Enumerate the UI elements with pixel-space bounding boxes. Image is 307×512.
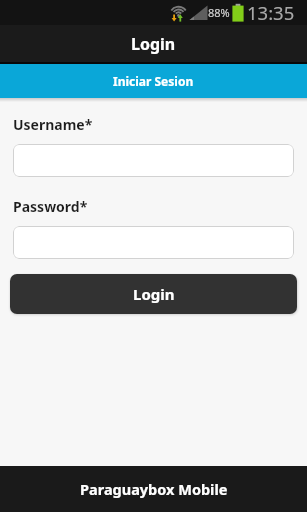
button[interactable]: Login <box>10 274 297 314</box>
staticText: 88% <box>208 5 230 20</box>
button[interactable] <box>13 226 294 259</box>
staticText: Password* <box>13 197 88 216</box>
button[interactable]: Iniciar Sesion <box>0 64 307 98</box>
staticText: Login <box>131 33 176 55</box>
staticText: Username* <box>13 115 93 134</box>
button[interactable] <box>13 144 294 177</box>
staticText: Login <box>133 284 175 304</box>
staticText: 13:35 <box>247 0 295 25</box>
button[interactable]: Paraguaybox Mobile <box>0 466 307 512</box>
staticText: Iniciar Sesion <box>113 73 194 89</box>
staticText: Paraguaybox Mobile <box>80 479 228 499</box>
